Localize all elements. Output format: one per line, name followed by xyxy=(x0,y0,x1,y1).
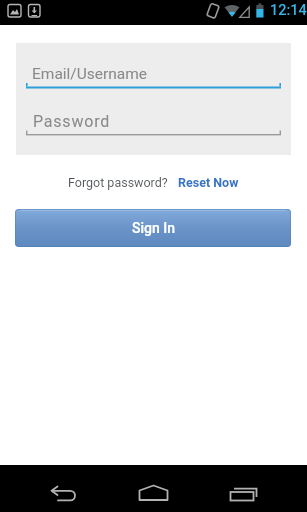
staticText: Sign In xyxy=(132,220,175,236)
staticText: Password xyxy=(33,112,111,131)
staticText: Reset Now xyxy=(178,175,239,190)
button[interactable]: Email/Username xyxy=(26,55,281,86)
button[interactable] xyxy=(130,465,176,512)
button[interactable] xyxy=(222,465,268,512)
button[interactable]: Reset Now xyxy=(178,175,239,190)
button[interactable] xyxy=(41,465,87,512)
staticText: 12:14 xyxy=(270,2,307,19)
button[interactable]: Password xyxy=(26,103,281,134)
button[interactable]: Sign In xyxy=(15,209,291,247)
staticText: Email/Username xyxy=(32,65,148,83)
staticText: Forgot password? xyxy=(68,175,168,190)
